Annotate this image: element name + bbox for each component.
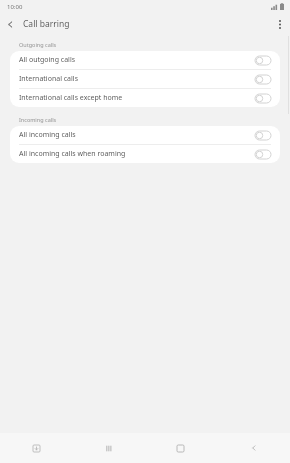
button[interactable]: All incoming calls when roaming [10, 145, 280, 163]
button[interactable]: International calls [10, 70, 280, 88]
button[interactable]: All outgoing calls [10, 51, 280, 69]
button[interactable]: Toggle [255, 94, 271, 103]
button[interactable]: Hide keyboard [0, 433, 72, 463]
staticText: Call barring [23, 18, 70, 30]
staticText: All incoming calls [19, 130, 255, 140]
button[interactable]: Toggle [255, 56, 271, 65]
staticText: All incoming calls when roaming [19, 149, 255, 159]
button[interactable]: Back [0, 14, 20, 34]
staticText: 10:00 [7, 3, 23, 11]
staticText: Incoming calls [19, 116, 57, 123]
button[interactable]: Toggle [255, 150, 271, 159]
button[interactable]: Toggle [255, 75, 271, 84]
staticText: International calls except home [19, 93, 255, 103]
button[interactable]: More options [270, 14, 290, 34]
button[interactable]: International calls except home [10, 89, 280, 107]
staticText: International calls [19, 74, 255, 84]
button[interactable]: Home [144, 433, 217, 463]
staticText: All outgoing calls [19, 55, 255, 65]
button[interactable]: Toggle [255, 131, 271, 140]
button[interactable]: Recents [72, 433, 144, 463]
staticText: Outgoing calls [19, 41, 57, 48]
button[interactable]: All incoming calls [10, 126, 280, 144]
